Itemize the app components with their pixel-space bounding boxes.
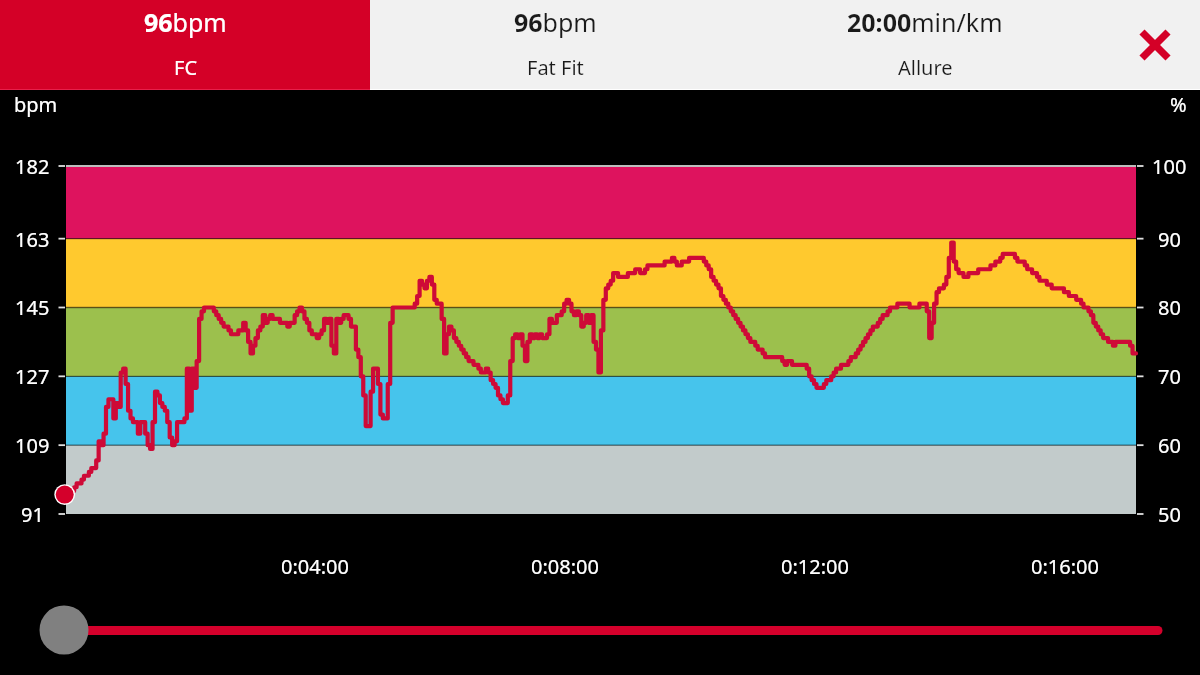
staticText: 127 [15,363,50,390]
staticText: 60 [1158,432,1181,459]
staticText: 20:00min/km [847,5,1003,39]
staticText: 80 [1158,294,1181,321]
staticText: 0:16:00 [1031,553,1099,580]
staticText: 163 [15,226,50,253]
staticText: 0:12:00 [781,553,849,580]
staticText: 90 [1158,226,1181,253]
button[interactable]: 96bpm [370,0,740,90]
staticText: 109 [15,432,50,459]
staticText: 100 [1152,153,1187,180]
staticText: bpm [14,91,58,118]
staticText: % [1170,91,1187,118]
staticText: FC [174,54,198,81]
button[interactable]: 96bpm [0,0,370,90]
staticText: 91 [21,501,44,528]
button[interactable]: 20:00min/km [740,0,1110,90]
staticText: 145 [15,294,50,321]
button[interactable]: Heart rate chart [66,166,1136,514]
staticText: Allure [898,54,953,81]
staticText: Fat Fit [527,54,584,81]
staticText: 96bpm [514,5,597,39]
staticText: 182 [15,153,50,180]
staticText: 70 [1158,363,1181,390]
button[interactable]: Seek through workout [0,600,1200,660]
button[interactable]: Close [1110,0,1200,90]
staticText: 0:04:00 [281,553,349,580]
staticText: 50 [1158,501,1181,528]
staticText: 96bpm [144,5,227,39]
staticText: 0:08:00 [531,553,599,580]
